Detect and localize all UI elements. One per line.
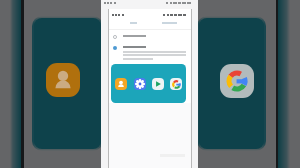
button[interactable]	[152, 18, 186, 28]
button[interactable]	[108, 41, 191, 62]
button[interactable]	[108, 30, 191, 41]
button[interactable]: Play Store	[152, 78, 164, 90]
button[interactable]: Settings	[134, 78, 146, 90]
button[interactable]: Contacts	[115, 78, 127, 90]
button[interactable]: Google	[170, 78, 182, 90]
button[interactable]	[116, 18, 150, 28]
